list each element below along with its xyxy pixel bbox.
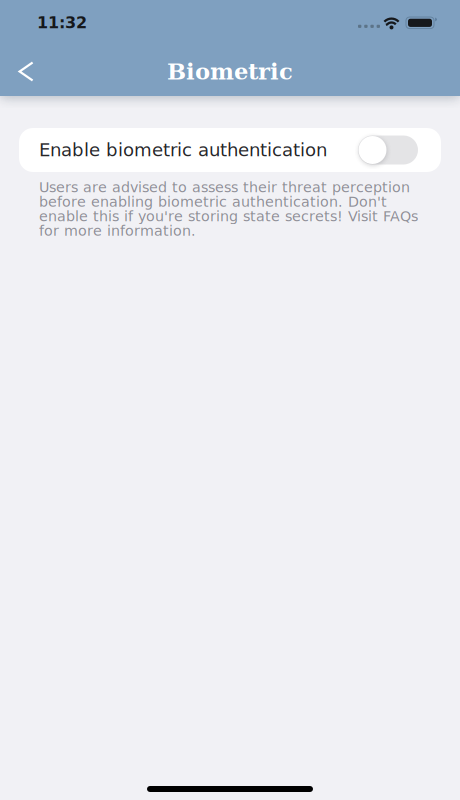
staticText: Enable biometric authentication (39, 139, 327, 160)
staticText: Users are advised to assess their threat… (39, 179, 418, 239)
staticText: Biometric (167, 58, 293, 85)
button[interactable]: Back (0, 44, 50, 96)
button[interactable]: Enable biometric authentication (19, 128, 441, 172)
staticText: 11:32 (37, 13, 87, 32)
